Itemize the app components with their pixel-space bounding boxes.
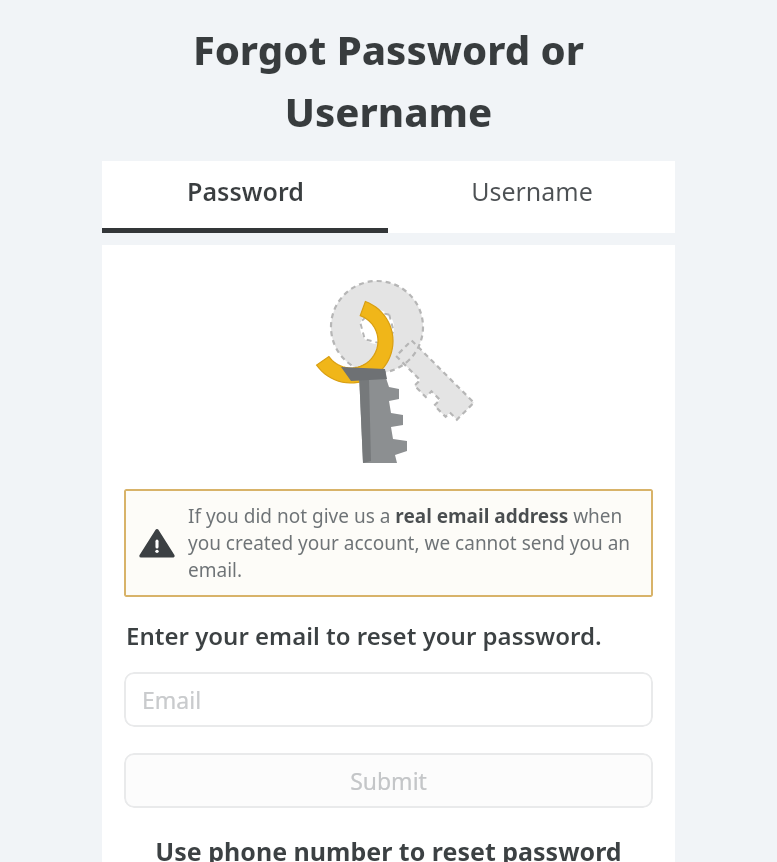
staticText: Use phone number to reset password [155, 834, 622, 862]
staticText: Password [187, 174, 304, 208]
staticText: Forgot Password or Username [70, 22, 707, 138]
button[interactable]: Submit [124, 753, 653, 808]
button[interactable]: Password [102, 161, 388, 233]
staticText: Submit [350, 765, 427, 796]
staticText: Email [142, 684, 202, 715]
button[interactable]: Email [124, 672, 653, 727]
other: Keys illustration [289, 269, 489, 469]
button[interactable]: Username [388, 161, 675, 233]
staticText: Enter your email to reset your password. [126, 619, 602, 652]
staticText: If you did not give us a real email addr… [188, 503, 637, 583]
staticText: Username [471, 174, 593, 208]
button[interactable]: Use phone number to reset password [102, 834, 675, 862]
